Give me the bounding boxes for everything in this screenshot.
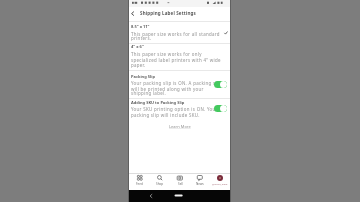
- button[interactable]: [214, 105, 227, 112]
- staticText: 4" x 6": [131, 44, 144, 49]
- staticText: This paper size works for only: [131, 51, 202, 57]
- button[interactable]: [214, 81, 227, 88]
- staticText: Your packing slip is ON. A packing slip: [131, 80, 222, 86]
- button[interactable]: [129, 99, 230, 118]
- staticText: Feed: [136, 182, 143, 186]
- button[interactable]: [129, 7, 230, 21]
- staticText: Your SKU printing option is ON. Your: [131, 106, 218, 112]
- button[interactable]: @stylist_outle: [210, 174, 230, 189]
- staticText: Adding SKU to Packing Slip: [131, 100, 185, 105]
- staticText: 8.5" x 11": [131, 24, 150, 29]
- staticText: will be printed along with your: [131, 86, 204, 92]
- staticText: printers.: [131, 35, 152, 41]
- button[interactable]: [129, 21, 230, 43]
- button[interactable]: Feed: [129, 174, 150, 189]
- staticText: packing slip will include SKU.: [131, 112, 200, 118]
- button[interactable]: Shop: [150, 174, 170, 189]
- staticText: This paper size works for all standard: [131, 31, 220, 37]
- button[interactable]: [129, 44, 230, 70]
- staticText: @stylist_outle: [212, 182, 228, 185]
- staticText: paper.: [131, 62, 146, 68]
- staticText: Packing Slip: [131, 74, 155, 79]
- staticText: shipping label.: [131, 90, 166, 96]
- staticText: News: [196, 182, 204, 186]
- staticText: Shop: [156, 182, 164, 186]
- staticText: Sell: [178, 182, 183, 186]
- button[interactable]: News: [190, 174, 210, 189]
- staticText: specialized label printers with 4" wide: [131, 57, 221, 63]
- staticText: Shipping Label Settings: [140, 10, 196, 16]
- staticText: Learn More: [169, 124, 191, 129]
- button[interactable]: Learn More: [169, 124, 191, 129]
- button[interactable]: [129, 71, 230, 98]
- button[interactable]: Sell: [170, 174, 190, 189]
